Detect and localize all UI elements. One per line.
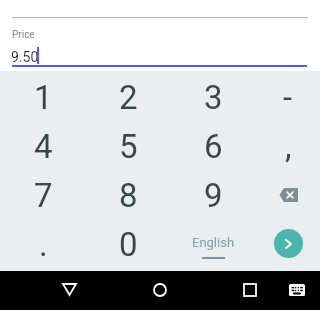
button[interactable]: 1 xyxy=(0,72,86,121)
staticText: 9 xyxy=(204,176,223,215)
button[interactable]: English xyxy=(171,219,256,267)
staticText: 1 xyxy=(34,78,53,117)
button[interactable]: Switch keyboard xyxy=(279,271,315,310)
staticText: , xyxy=(285,127,292,166)
button[interactable]: 0 xyxy=(86,219,171,267)
staticText: 0 xyxy=(119,225,138,264)
staticText: 3 xyxy=(204,78,223,117)
button[interactable]: Recent apps xyxy=(227,271,272,310)
staticText: English xyxy=(192,235,235,250)
staticText: 6 xyxy=(204,127,223,166)
button[interactable]: Back xyxy=(47,271,92,310)
staticText: 5 xyxy=(119,127,138,166)
button[interactable]: 6 xyxy=(171,121,256,170)
button[interactable]: 5 xyxy=(86,121,171,170)
button[interactable]: Backspace xyxy=(256,170,320,219)
button[interactable]: 7 xyxy=(0,170,86,219)
staticText: 4 xyxy=(34,127,53,166)
button[interactable]: Enter xyxy=(256,219,320,267)
button[interactable]: - xyxy=(256,72,320,121)
staticText: - xyxy=(283,78,293,117)
button[interactable]: . xyxy=(0,219,86,267)
button[interactable]: 3 xyxy=(171,72,256,121)
button[interactable]: Home xyxy=(137,271,182,310)
staticText: 2 xyxy=(119,78,138,117)
button[interactable]: 9 xyxy=(171,170,256,219)
button[interactable]: 8 xyxy=(86,170,171,219)
staticText: Price xyxy=(12,29,35,41)
staticText: . xyxy=(39,225,48,264)
button[interactable]: , xyxy=(256,121,320,170)
button[interactable]: 4 xyxy=(0,121,86,170)
staticText: 9.50 xyxy=(11,49,39,65)
staticText: 8 xyxy=(119,176,138,215)
staticText: 7 xyxy=(34,176,53,215)
button[interactable]: 2 xyxy=(86,72,171,121)
